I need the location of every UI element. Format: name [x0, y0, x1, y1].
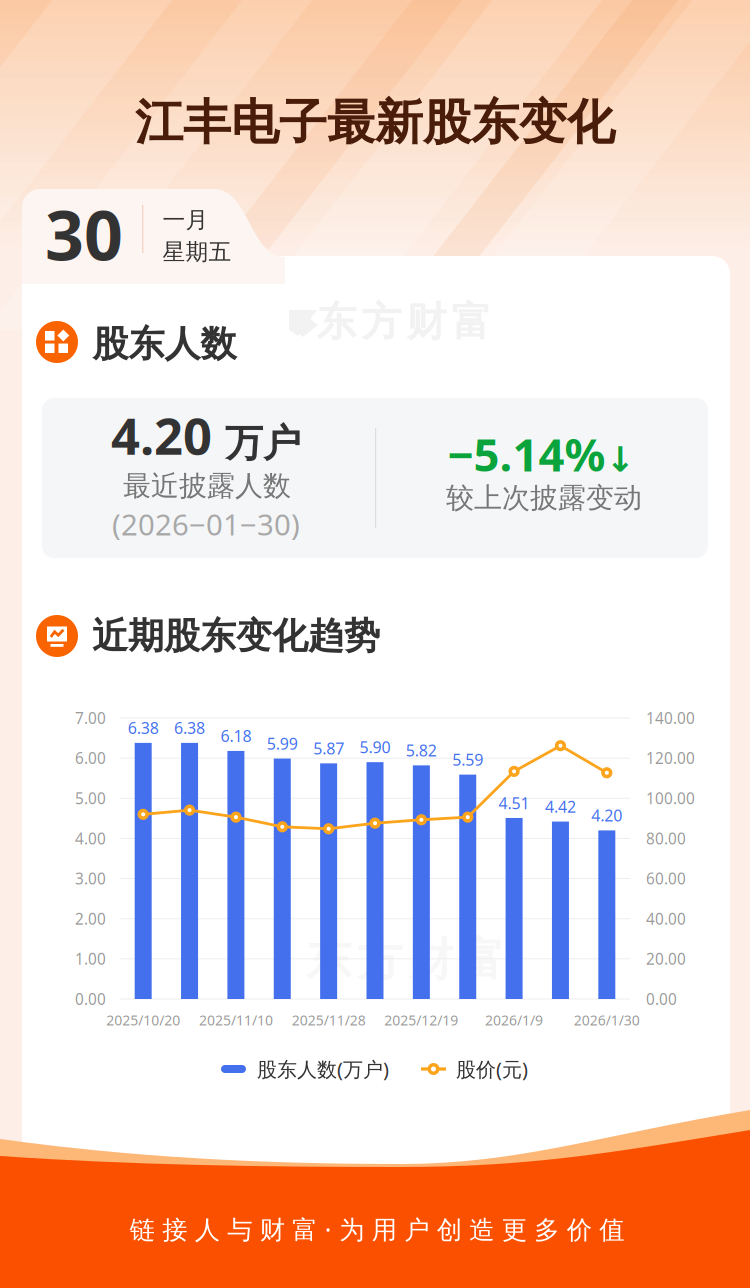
staticText: 0.00	[75, 989, 106, 1009]
staticText: 5.99	[267, 733, 298, 754]
staticText: 2026/1/9	[485, 1010, 543, 1030]
staticText: 股东人数(万户)	[257, 1055, 389, 1083]
staticText: 6.38	[174, 717, 205, 739]
staticText: 5.87	[313, 737, 344, 759]
staticText: 2026/1/30	[574, 1010, 640, 1030]
staticText: 30	[45, 188, 123, 280]
staticText: 120.00	[646, 748, 695, 769]
staticText: 5.82	[406, 739, 437, 761]
staticText: (2026−01−30)	[112, 504, 300, 544]
staticText: 4.42	[545, 796, 576, 817]
staticText: 较上次披露变动	[446, 480, 642, 516]
staticText: 2025/11/10	[199, 1010, 273, 1030]
staticText: 5.59	[452, 749, 483, 770]
staticText: 2025/10/20	[106, 1010, 180, 1030]
staticText: 80.00	[646, 828, 686, 849]
staticText: 6.38	[128, 717, 159, 739]
staticText: 7.00	[75, 708, 106, 728]
staticText: 6.18	[220, 725, 251, 747]
staticText: 140.00	[646, 708, 695, 728]
staticText: 4.51	[499, 792, 530, 814]
staticText: 0.00	[646, 989, 677, 1009]
staticText: 东方财富	[316, 297, 491, 347]
staticText: 4.20	[591, 804, 622, 826]
staticText: 100.00	[646, 788, 695, 809]
staticText: 5.90	[359, 736, 390, 758]
staticText: 股东人数	[92, 321, 236, 367]
staticText: 1.00	[75, 948, 106, 969]
staticText: 星期五	[162, 238, 231, 266]
staticText: 2.00	[75, 908, 106, 929]
staticText: 20.00	[646, 948, 686, 969]
staticText: 5.00	[75, 788, 106, 809]
staticText: 最近披露人数	[123, 468, 291, 504]
staticText: 江丰电子最新股东变化	[135, 92, 615, 153]
staticText: 3.00	[75, 868, 106, 889]
staticText: 一月	[162, 206, 208, 234]
staticText: 4.00	[75, 828, 106, 849]
staticText: 40.00	[646, 908, 686, 929]
staticText: 近期股东变化趋势	[92, 613, 380, 659]
staticText: 2025/12/19	[384, 1010, 458, 1030]
staticText: 东方财富	[306, 931, 504, 988]
staticText: 链接人与财富·为用户创造更多价值	[130, 1212, 624, 1246]
staticText: 股价(元)	[456, 1055, 528, 1083]
staticText: 2025/11/28	[292, 1010, 366, 1030]
staticText: 60.00	[646, 868, 686, 889]
staticText: −5.14%↓	[447, 424, 634, 484]
staticText: 6.00	[75, 748, 106, 769]
staticText: 4.20 万户	[111, 401, 301, 469]
